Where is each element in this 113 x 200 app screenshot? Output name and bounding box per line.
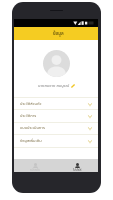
staticText: โปรไฟล์ — [73, 168, 82, 172]
button[interactable]: แบบประเมินการ — [14, 122, 98, 134]
button[interactable]: แก้ไขชื่อ — [71, 84, 75, 88]
staticText: นายสมชาย สมบูรณ์ — [38, 83, 70, 89]
staticText: ข้อมูล — [53, 30, 64, 37]
button[interactable]: หน้าหลัก — [14, 159, 56, 172]
button[interactable]: ข้อมูลเพิ่มเติม — [14, 135, 98, 147]
staticText: ประวัติส่วนตัว — [20, 101, 42, 107]
button[interactable]: ประวัติส่วนตัว — [14, 98, 98, 110]
staticText: ข้อมูลเพิ่มเติม — [20, 138, 42, 144]
staticText: ประวัติการ — [20, 113, 37, 119]
button[interactable]: ประวัติการ — [14, 110, 98, 122]
staticText: แบบประเมินการ — [20, 125, 45, 131]
button[interactable]: โปรไฟล์ — [56, 159, 98, 172]
staticText: หน้าหลัก — [30, 168, 40, 172]
